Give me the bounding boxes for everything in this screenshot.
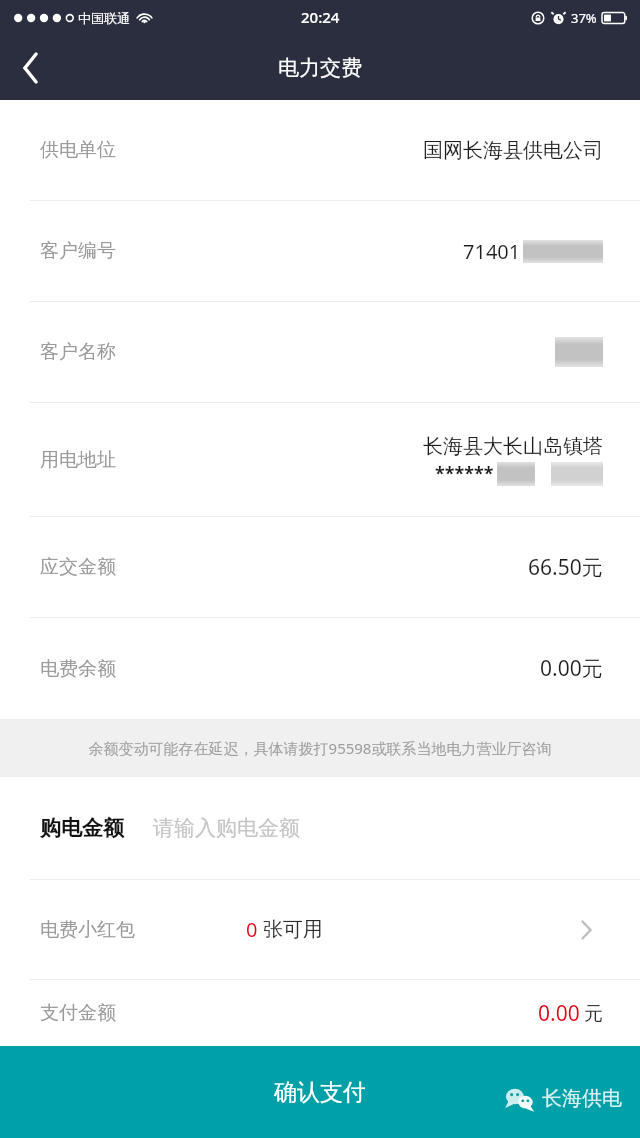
staticText: 20:24 — [301, 7, 340, 27]
staticText: 长海供电 — [542, 1086, 622, 1111]
staticText: 确认支付 — [274, 1078, 366, 1107]
staticText: 电费余额 — [40, 657, 116, 681]
staticText: 支付金额 — [40, 1001, 116, 1025]
staticText: 余额变动可能存在延迟，具体请拨打95598或联系当地电力营业厅咨询 — [14, 738, 626, 758]
button[interactable]: 确认支付 — [0, 1046, 640, 1138]
staticText: 中国联通 — [78, 10, 130, 26]
staticText: 0.00 — [538, 999, 580, 1028]
staticText: 国网长海县供电公司 — [423, 138, 603, 163]
staticText: 66.50元 — [528, 553, 603, 582]
staticText: 37% — [571, 9, 597, 27]
staticText: 0.00元 — [540, 654, 603, 683]
staticText: 应交金额 — [40, 555, 116, 579]
staticText: 张可用 — [263, 917, 323, 942]
staticText: 供电单位 — [40, 138, 116, 162]
staticText: 客户名称 — [40, 340, 116, 364]
staticText: 长海县大长山岛镇塔 — [423, 434, 603, 459]
staticText: ****** — [435, 461, 494, 486]
staticText: 电费小红包 — [40, 918, 135, 942]
staticText: 电力交费 — [278, 55, 362, 81]
button[interactable]: 电费小红包 — [0, 880, 640, 979]
staticText: 客户编号 — [40, 239, 116, 263]
button[interactable]: Back — [0, 36, 62, 100]
staticText: 用电地址 — [40, 448, 116, 472]
staticText: 请输入购电金额 — [153, 815, 300, 841]
staticText: 元 — [584, 1002, 603, 1026]
staticText: 购电金额 — [40, 815, 124, 841]
staticText: 71401 — [463, 238, 521, 265]
staticText: 0 — [246, 916, 258, 943]
